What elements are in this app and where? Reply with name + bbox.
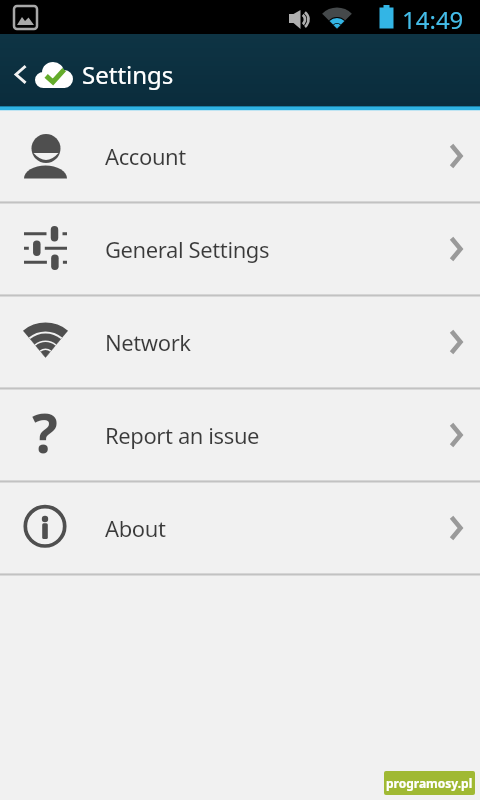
staticText: programosy.pl [386,775,473,791]
staticText: About [105,513,166,543]
button[interactable]: ? [0,390,480,480]
staticText: Account [105,141,186,171]
button[interactable]: General Settings [0,204,480,294]
button[interactable]: Settings [0,43,480,106]
staticText: ? [32,395,58,469]
button[interactable]: programosy.pl [384,771,475,795]
button[interactable]: Network [0,297,480,387]
staticText: Network [105,327,191,357]
staticText: 14:49 [402,3,464,36]
staticText: General Settings [105,234,270,264]
staticText: Settings [82,58,174,91]
button[interactable]: About [0,483,480,573]
staticText: Report an issue [105,420,260,450]
button[interactable]: Account [0,111,480,201]
